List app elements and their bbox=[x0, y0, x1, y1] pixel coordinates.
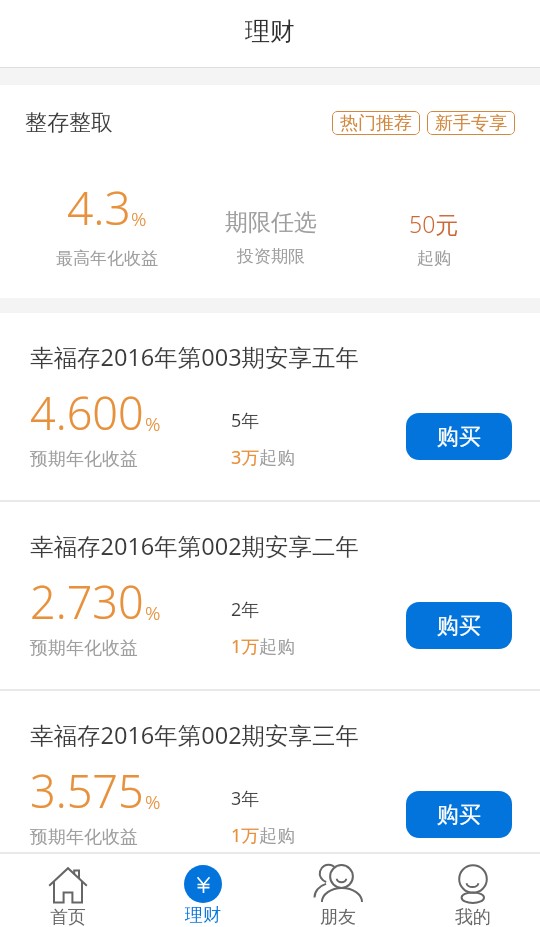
button[interactable]: 购买 bbox=[406, 413, 512, 460]
staticText: % bbox=[145, 789, 161, 815]
staticText: 幸福存2016年第003期安享五年 bbox=[30, 341, 360, 373]
staticText: 3年 bbox=[231, 786, 260, 811]
staticText: 幸福存2016年第002期安享二年 bbox=[30, 530, 360, 562]
staticText: 投资期限 bbox=[237, 246, 305, 267]
button[interactable]: 理财 Wealth bbox=[135, 854, 270, 927]
staticText: 4.600 bbox=[30, 382, 144, 443]
staticText: 新手专享 bbox=[435, 112, 507, 135]
staticText: 期限任选 bbox=[225, 208, 317, 237]
button[interactable]: 购买 bbox=[406, 791, 512, 838]
staticText: 购买 bbox=[437, 801, 481, 829]
staticText: 5年 bbox=[231, 408, 260, 433]
staticText: 预期年化收益 bbox=[30, 826, 138, 849]
button[interactable]: 幸福存2016年第002期安享三年 bbox=[0, 691, 540, 880]
staticText: 2.730 bbox=[30, 571, 144, 632]
staticText: 2年 bbox=[231, 597, 260, 622]
staticText: 预期年化收益 bbox=[30, 637, 138, 660]
button[interactable]: 热门推荐 bbox=[332, 111, 420, 135]
staticText: 热门推荐 bbox=[340, 112, 412, 135]
staticText: 最高年化收益 bbox=[56, 248, 158, 269]
button[interactable]: 幸福存2016年第003期安享五年 bbox=[0, 313, 540, 502]
staticText: 购买 bbox=[437, 423, 481, 451]
staticText: 3万起购 bbox=[231, 445, 296, 470]
staticText: % bbox=[131, 206, 147, 232]
staticText: 购买 bbox=[437, 612, 481, 640]
staticText: 理财 bbox=[185, 904, 221, 927]
staticText: 4.3 bbox=[67, 176, 131, 239]
staticText: % bbox=[145, 600, 161, 626]
button[interactable]: 幸福存2016年第002期安享二年 bbox=[0, 502, 540, 691]
staticText: % bbox=[145, 411, 161, 437]
button[interactable]: 我的 Profile bbox=[405, 854, 540, 927]
button[interactable]: 新手专享 bbox=[427, 111, 515, 135]
staticText: 我的 bbox=[455, 906, 491, 927]
staticText: 1万起购 bbox=[231, 634, 296, 659]
staticText: 起购 bbox=[417, 248, 451, 269]
staticText: 幸福存2016年第002期安享三年 bbox=[30, 719, 360, 751]
staticText: 首页 bbox=[50, 906, 86, 927]
staticText: 整存整取 bbox=[25, 109, 113, 137]
button[interactable]: 购买 bbox=[406, 602, 512, 649]
staticText: 预期年化收益 bbox=[30, 448, 138, 471]
staticText: 3.575 bbox=[30, 760, 144, 821]
button[interactable]: 朋友 Friends bbox=[270, 854, 405, 927]
staticText: 1万起购 bbox=[231, 823, 296, 848]
button[interactable]: 首页 Home bbox=[0, 854, 135, 927]
staticText: 朋友 bbox=[320, 906, 356, 927]
staticText: 50元 bbox=[409, 208, 459, 239]
staticText: 理财 bbox=[245, 16, 295, 47]
